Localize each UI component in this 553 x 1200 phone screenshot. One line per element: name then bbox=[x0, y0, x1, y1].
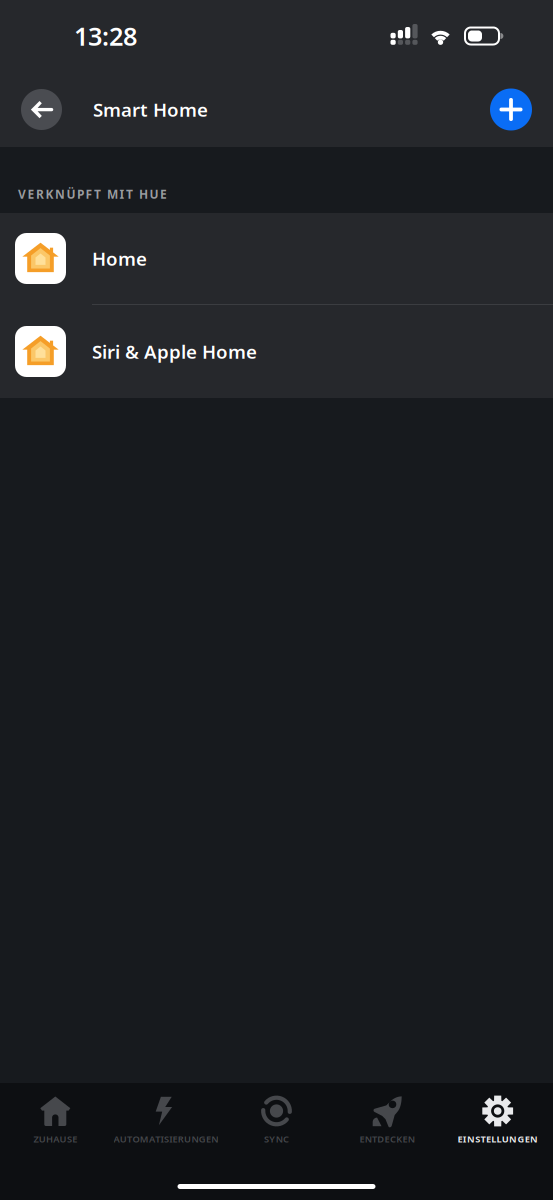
button[interactable]: ENTDECKEN bbox=[332, 1083, 442, 1153]
button[interactable]: EINSTELLUNGEN bbox=[442, 1083, 553, 1153]
button[interactable]: Add bbox=[490, 88, 532, 130]
staticText: EINSTELLUNGEN bbox=[457, 1133, 538, 1145]
button[interactable]: Siri & Apple Home bbox=[0, 305, 553, 398]
staticText: 13:28 bbox=[74, 19, 137, 53]
staticText: Smart Home bbox=[93, 97, 208, 122]
staticText: ENTDECKEN bbox=[359, 1133, 415, 1145]
staticText: VERKNÜPFT MIT HUE bbox=[18, 186, 167, 202]
staticText: AUTOMATISIERUNGEN bbox=[113, 1133, 218, 1145]
button[interactable]: Home bbox=[0, 213, 553, 305]
staticText: SYNC bbox=[264, 1133, 289, 1145]
staticText: ZUHAUSE bbox=[33, 1133, 77, 1145]
staticText: Home bbox=[92, 246, 147, 271]
button[interactable]: ZUHAUSE bbox=[0, 1083, 111, 1153]
button[interactable]: SYNC bbox=[221, 1083, 332, 1153]
staticText: Siri & Apple Home bbox=[92, 339, 257, 364]
button[interactable]: Back bbox=[21, 89, 62, 130]
button[interactable]: AUTOMATISIERUNGEN bbox=[111, 1083, 221, 1153]
